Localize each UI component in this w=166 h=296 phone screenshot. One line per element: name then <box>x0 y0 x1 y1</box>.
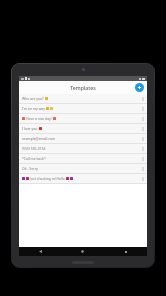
button[interactable]: Have a nice day! <box>19 114 147 124</box>
staticText: Templates <box>19 84 147 91</box>
button[interactable]: example@email.com <box>19 134 147 144</box>
staticText: I'm on my way <box>22 106 45 111</box>
staticText: *Call me back* <box>22 156 46 161</box>
staticText: I love you <box>22 126 38 131</box>
button[interactable]: Recent apps <box>104 247 147 256</box>
button[interactable]: I'm on my way <box>19 104 147 114</box>
staticText: (555) 555-0134 <box>22 146 46 151</box>
button[interactable]: Add template <box>135 83 144 92</box>
staticText: Ok - Sorry <box>22 166 38 171</box>
button[interactable]: Who are you? <box>19 94 147 104</box>
button[interactable]: Just checking in! Hello <box>19 174 147 184</box>
staticText: Who are you? <box>22 96 44 101</box>
button[interactable]: Home <box>61 247 104 256</box>
button[interactable]: Ok - Sorry <box>19 164 147 174</box>
button[interactable]: *Call me back* <box>19 154 147 164</box>
staticText: Have a nice day! <box>26 116 52 121</box>
button[interactable]: Back <box>19 247 61 256</box>
button[interactable]: (555) 555-0134 <box>19 144 147 154</box>
staticText: example@email.com <box>22 136 56 141</box>
button[interactable]: I love you <box>19 124 147 134</box>
staticText: Just checking in! Hello <box>30 176 65 181</box>
